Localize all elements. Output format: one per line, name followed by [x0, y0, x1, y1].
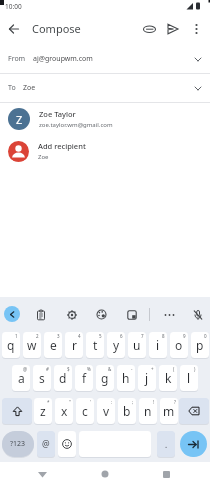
- button[interactable]: [32, 467, 52, 481]
- button[interactable]: @: [37, 431, 55, 457]
- button[interactable]: y: [107, 332, 125, 358]
- staticText: 2: [36, 333, 39, 339]
- staticText: +: [151, 366, 154, 372]
- staticText: 4: [78, 333, 81, 339]
- button[interactable]: n: [139, 398, 157, 424]
- button[interactable]: Add recipient: [0, 135, 210, 167]
- button[interactable]: [124, 307, 139, 322]
- staticText: n: [144, 403, 152, 419]
- button[interactable]: t: [86, 332, 104, 358]
- staticText: %: [87, 366, 91, 372]
- staticText: ): [194, 366, 196, 372]
- button[interactable]: [0, 15, 28, 43]
- button[interactable]: b: [118, 398, 136, 424]
- button[interactable]: From: [0, 45, 210, 73]
- staticText: x: [61, 403, 68, 419]
- button[interactable]: Z: [0, 103, 210, 135]
- button[interactable]: To: [0, 74, 210, 102]
- staticText: c: [82, 403, 88, 419]
- staticText: ': [90, 399, 92, 405]
- button[interactable]: [94, 307, 109, 322]
- staticText: Zoe Taylor: [39, 109, 76, 119]
- staticText: m: [163, 403, 175, 419]
- staticText: f: [82, 370, 87, 386]
- staticText: 10:00: [5, 2, 22, 11]
- staticText: y: [113, 337, 120, 353]
- staticText: p: [196, 337, 204, 353]
- staticText: h: [122, 370, 130, 386]
- button[interactable]: ?123: [2, 431, 34, 457]
- staticText: 6: [120, 333, 123, 339]
- button[interactable]: h: [117, 365, 135, 391]
- staticText: *: [47, 399, 50, 405]
- button[interactable]: p: [191, 332, 209, 358]
- button[interactable]: c: [76, 398, 94, 424]
- staticText: 3: [57, 333, 60, 339]
- button[interactable]: z: [34, 398, 52, 424]
- staticText: k: [165, 370, 172, 386]
- button[interactable]: i: [149, 332, 167, 358]
- staticText: w: [27, 337, 37, 353]
- staticText: zoe.taylor.wm@gmail.com: [39, 121, 113, 129]
- button[interactable]: o: [170, 332, 188, 358]
- staticText: r: [72, 337, 77, 353]
- button[interactable]: [58, 431, 76, 457]
- button[interactable]: [64, 307, 79, 322]
- staticText: Compose: [32, 21, 81, 36]
- button[interactable]: a: [12, 365, 30, 391]
- staticText: Zoe: [38, 153, 49, 161]
- button[interactable]: d: [54, 365, 72, 391]
- button[interactable]: [180, 431, 207, 457]
- button[interactable]: [4, 306, 20, 322]
- button[interactable]: s: [33, 365, 51, 391]
- button[interactable]: m: [160, 398, 178, 424]
- staticText: i: [156, 337, 160, 353]
- staticText: s: [39, 370, 45, 386]
- staticText: l: [187, 370, 191, 386]
- button[interactable]: x: [55, 398, 73, 424]
- button[interactable]: [161, 17, 185, 41]
- staticText: v: [103, 403, 110, 419]
- staticText: Zoe: [23, 83, 36, 93]
- staticText: j: [145, 370, 149, 386]
- button[interactable]: u: [128, 332, 146, 358]
- staticText: @: [42, 438, 50, 450]
- staticText: g: [101, 370, 109, 386]
- staticText: 9: [183, 333, 186, 339]
- staticText: aj@groupwm.com: [33, 54, 93, 64]
- staticText: @: [23, 366, 28, 372]
- staticText: u: [133, 337, 141, 353]
- staticText: -: [131, 366, 133, 372]
- button[interactable]: [95, 467, 115, 481]
- staticText: (: [173, 366, 175, 372]
- button[interactable]: [2, 398, 32, 424]
- button[interactable]: [162, 307, 177, 322]
- button[interactable]: g: [96, 365, 114, 391]
- staticText: 8: [162, 333, 165, 339]
- button[interactable]: v: [97, 398, 115, 424]
- button[interactable]: f: [75, 365, 93, 391]
- button[interactable]: .: [157, 431, 175, 457]
- button[interactable]: l: [180, 365, 198, 391]
- button[interactable]: q: [2, 332, 20, 358]
- button[interactable]: [156, 467, 176, 481]
- staticText: 1: [15, 333, 18, 339]
- button[interactable]: [179, 398, 209, 424]
- staticText: ": [69, 399, 71, 405]
- button[interactable]: [137, 17, 161, 41]
- staticText: 0: [204, 333, 207, 339]
- staticText: e: [50, 337, 57, 353]
- staticText: o: [175, 337, 183, 353]
- staticText: #: [46, 366, 49, 372]
- button[interactable]: w: [23, 332, 41, 358]
- staticText: b: [123, 403, 131, 419]
- button[interactable]: e: [44, 332, 62, 358]
- button[interactable]: [185, 18, 207, 40]
- button[interactable]: [33, 307, 48, 322]
- staticText: ;: [132, 399, 134, 405]
- button[interactable]: k: [159, 365, 177, 391]
- button[interactable]: [190, 307, 205, 322]
- button[interactable]: j: [138, 365, 156, 391]
- button[interactable]: r: [65, 332, 83, 358]
